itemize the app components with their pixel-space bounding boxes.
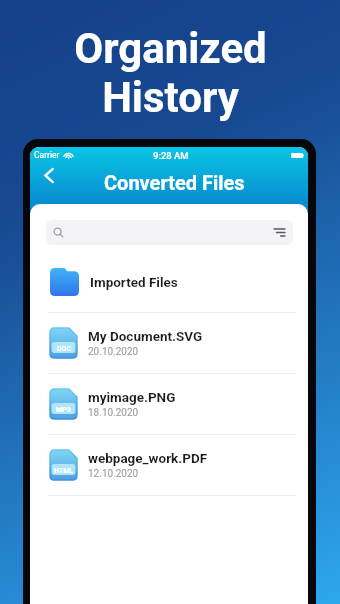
button[interactable]: MP3 — [30, 374, 308, 434]
staticText: Organized — [74, 24, 267, 73]
staticText: Carrier — [34, 150, 60, 160]
staticText: myimage.PNG — [88, 389, 176, 405]
staticText: HTML — [54, 467, 74, 475]
staticText: 20.10.2020 — [88, 346, 139, 358]
staticText: Converted Files — [104, 171, 245, 194]
staticText: Imported Files — [90, 274, 178, 290]
button[interactable]: HTML — [30, 435, 308, 495]
staticText: MP3 — [56, 406, 71, 414]
staticText: webpage_work.PDF — [88, 450, 208, 466]
button[interactable]: Imported Files — [30, 252, 308, 312]
staticText: 12.10.2020 — [88, 468, 139, 480]
button[interactable] — [46, 220, 293, 245]
staticText: DOC — [57, 345, 71, 353]
button[interactable]: Back — [40, 166, 58, 184]
staticText: History — [102, 73, 239, 122]
staticText: 18.10.2020 — [88, 407, 139, 419]
staticText: 9:28 AM — [153, 150, 189, 161]
button[interactable]: DOC — [30, 313, 308, 373]
staticText: My Document.SVG — [88, 328, 203, 344]
